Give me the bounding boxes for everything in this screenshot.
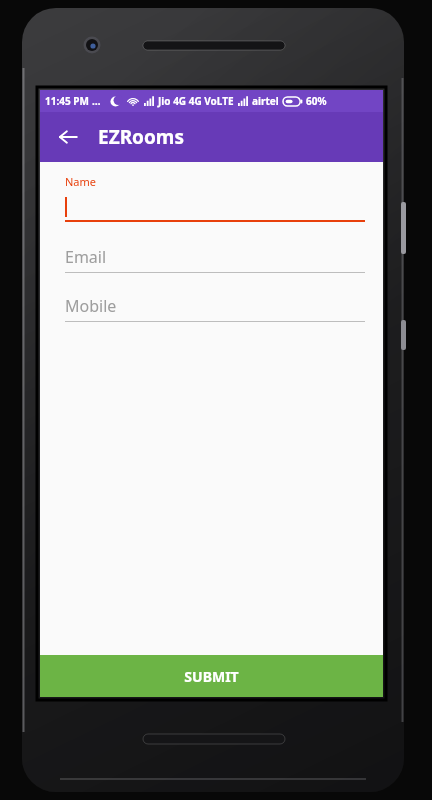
- staticText: Mobile: [65, 295, 117, 317]
- button[interactable]: Email: [40, 242, 383, 273]
- staticText: …: [92, 94, 101, 108]
- staticText: 11:45 PM: [45, 94, 89, 108]
- button[interactable]: Mobile: [40, 291, 383, 322]
- button[interactable]: Name: [40, 174, 383, 222]
- staticText: airtel: [252, 94, 279, 108]
- button[interactable]: SUBMIT: [40, 655, 383, 697]
- staticText: Name: [65, 174, 97, 189]
- staticText: Jio 4G 4G VoLTE: [158, 94, 234, 108]
- staticText: SUBMIT: [184, 667, 239, 686]
- staticText: EZRooms: [98, 124, 184, 150]
- button[interactable]: Back: [48, 117, 88, 157]
- staticText: Email: [65, 246, 107, 268]
- staticText: 60%: [306, 94, 327, 108]
